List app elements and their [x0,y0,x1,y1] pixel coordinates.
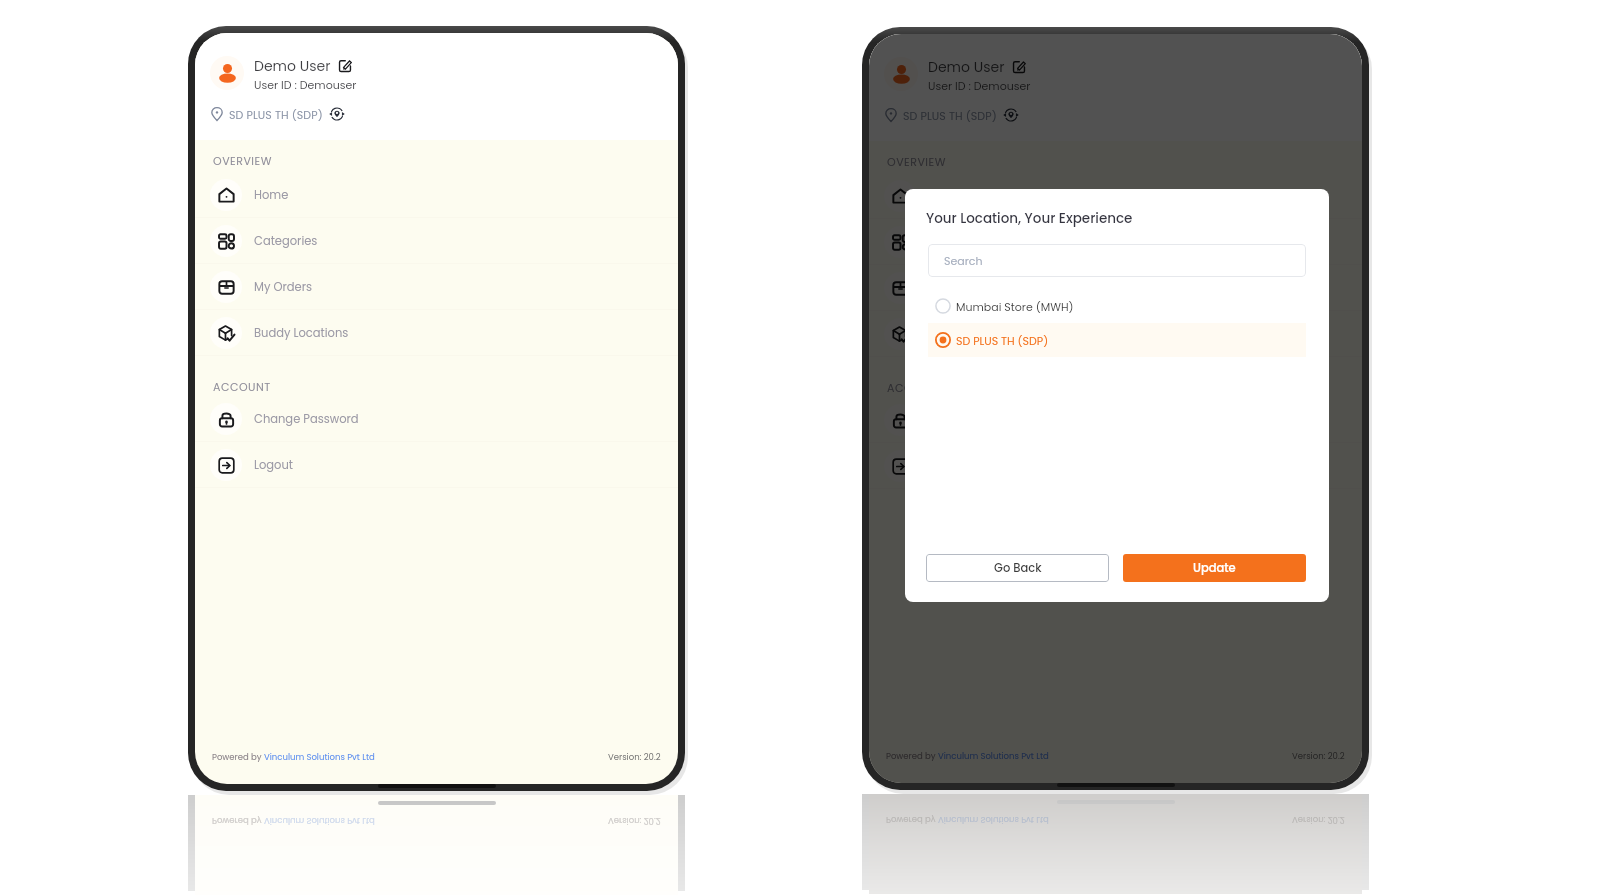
staticText: Vinculum Solutions Pvt Ltd [938,814,1049,826]
staticText: Powered by [886,814,938,826]
button[interactable]: Categories [869,219,1362,264]
staticText: Powered by [212,751,264,763]
staticText: Home [254,187,289,203]
staticText: Demo User [254,56,331,76]
staticText: OVERVIEW [887,154,946,169]
button[interactable]: Change store [1003,107,1019,123]
staticText: Your Location, Your Experience [926,209,1133,228]
button[interactable]: Logout [869,443,1362,488]
staticText: Vinculum Solutions Pvt Ltd [264,815,375,827]
staticText: Categories [254,233,318,249]
button[interactable]: Change store [329,106,345,122]
button[interactable]: Edit profile [338,59,352,73]
staticText: OVERVIEW [213,153,272,168]
staticText: Vinculum Solutions Pvt Ltd [264,751,375,763]
button[interactable]: Home [195,172,678,217]
staticText: Buddy Locations [254,325,349,341]
staticText: Demo User [928,57,1005,77]
button[interactable]: Go Back [926,554,1109,582]
staticText: Go Back [994,560,1042,576]
button[interactable]: Logout [195,442,678,487]
staticText: SD PLUS TH (SDP) [903,108,997,123]
staticText: User ID : Demouser [928,78,1031,93]
button[interactable]: SD PLUS TH (SDP) [884,105,1019,125]
staticText: Mumbai Store (MWH) [956,299,1074,314]
button[interactable]: Search [928,244,1306,277]
button[interactable]: Change Password [195,396,678,441]
staticText: SD PLUS TH (SDP) [956,333,1049,348]
staticText: Version: 20.2 [608,751,661,763]
button[interactable]: Mumbai Store (MWH) [928,289,1306,323]
staticText: ACCOUNT [213,379,271,394]
button[interactable]: Buddy Locations [195,310,678,355]
staticText: Home [928,188,963,204]
button[interactable]: My Orders [869,265,1362,310]
staticText: Logout [254,457,294,473]
button[interactable]: Update [1123,554,1306,582]
staticText: Update [1193,560,1236,576]
button[interactable]: Profile avatar [884,57,918,91]
staticText: My Orders [254,279,312,295]
button[interactable]: Categories [195,218,678,263]
staticText: SD PLUS TH (SDP) [229,107,323,122]
staticText: Vinculum Solutions Pvt Ltd [938,750,1049,762]
staticText: User ID : Demouser [254,77,357,92]
button[interactable]: Edit profile [1012,60,1026,74]
staticText: Buddy Locations [928,326,1023,342]
button[interactable]: Change Password [869,397,1362,442]
staticText: Version: 20.2 [1292,750,1345,762]
button[interactable]: Buddy Locations [869,311,1362,356]
button[interactable]: Profile avatar [210,56,244,90]
staticText: Powered by [886,750,938,762]
staticText: Version: 20.2 [1292,814,1345,826]
staticText: Categories [928,234,992,250]
staticText: Version: 20.2 [608,815,661,827]
staticText: Powered by [212,815,264,827]
staticText: Change Password [254,411,359,427]
staticText: ACCOUNT [887,380,945,395]
button[interactable]: My Orders [195,264,678,309]
button[interactable]: SD PLUS TH (SDP) [210,104,345,124]
button[interactable]: SD PLUS TH (SDP) [928,323,1306,357]
staticText: Search [944,253,983,268]
button[interactable]: Home [869,173,1362,218]
